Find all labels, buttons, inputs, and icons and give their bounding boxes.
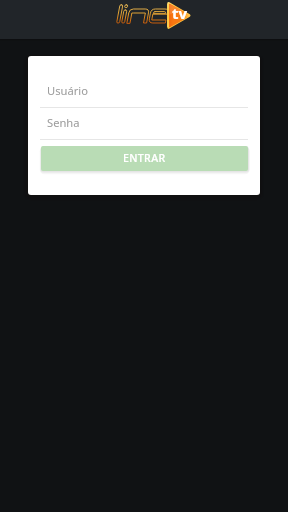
staticText: tv [172, 3, 188, 23]
button[interactable]: Usuário [40, 80, 248, 106]
staticText: ENTRAR [123, 151, 166, 165]
button[interactable]: Senha [40, 112, 248, 138]
staticText: Usuário [47, 83, 89, 98]
staticText: Senha [47, 115, 80, 130]
button[interactable]: ENTRAR [41, 146, 248, 171]
other: line tv [114, 0, 194, 34]
